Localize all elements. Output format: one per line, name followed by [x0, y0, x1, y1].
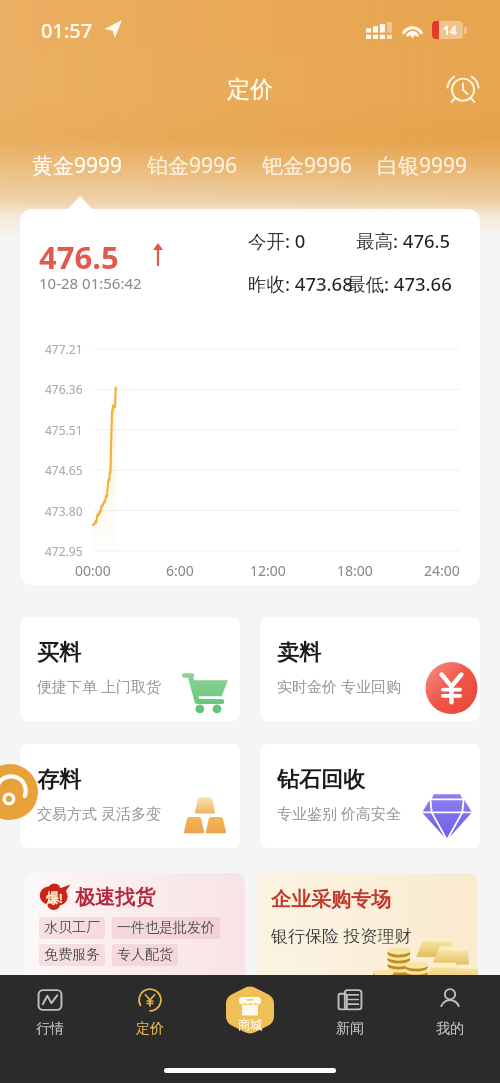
button[interactable]: 黄金9999: [20, 145, 135, 185]
staticText: 24:00: [424, 561, 460, 580]
button[interactable]: 定价: [100, 975, 200, 1049]
staticText: 6:00: [166, 561, 194, 580]
button[interactable]: 企业采购专场: [257, 873, 478, 983]
staticText: 银行保险 投资理财: [271, 924, 412, 947]
staticText: 行情: [36, 1020, 64, 1038]
staticText: 475.51: [45, 422, 83, 438]
staticText: 白银9999: [377, 151, 468, 180]
staticText: 00:00: [75, 561, 111, 580]
button[interactable]: 钯金9996: [250, 145, 365, 185]
staticText: 钻石回收: [277, 766, 365, 794]
staticText: 一件也是批发价: [117, 919, 215, 937]
button[interactable]: 商城: [226, 985, 274, 1035]
staticText: 免费服务: [44, 946, 100, 964]
staticText: 01:57: [41, 17, 93, 44]
button[interactable]: 卖料: [260, 617, 480, 721]
staticText: 12:00: [250, 561, 286, 580]
staticText: 铂金9996: [147, 151, 238, 180]
staticText: 473.80: [45, 503, 83, 519]
staticText: 最低: 473.66: [347, 271, 452, 296]
button[interactable]: 白银9999: [365, 145, 480, 185]
staticText: 定价: [227, 75, 273, 104]
staticText: 交易方式 灵活多变: [37, 803, 161, 823]
staticText: 钯金9996: [262, 151, 353, 180]
button[interactable]: 客服: [0, 764, 38, 820]
staticText: 476.5: [39, 236, 119, 278]
staticText: 14: [443, 22, 457, 38]
staticText: 我的: [436, 1020, 464, 1038]
button[interactable]: 行情: [0, 975, 100, 1049]
button[interactable]: 买料: [20, 617, 240, 721]
staticText: 476.36: [45, 381, 83, 397]
button[interactable]: 476.5: [20, 209, 480, 585]
staticText: 黄金9999: [32, 151, 123, 180]
button[interactable]: 钻石回收: [260, 744, 480, 848]
staticText: 定价: [136, 1020, 164, 1038]
button[interactable]: 新闻: [300, 975, 400, 1049]
staticText: 477.21: [45, 341, 83, 357]
button[interactable]: 铂金9996: [135, 145, 250, 185]
staticText: 极速找货: [75, 885, 155, 910]
staticText: 今开: 0: [248, 228, 306, 253]
staticText: 商城: [238, 1017, 262, 1032]
staticText: 卖料: [277, 639, 321, 667]
staticText: 472.95: [45, 543, 83, 559]
staticText: 昨收: 473.68: [248, 271, 353, 296]
staticText: 最高: 476.5: [356, 228, 451, 253]
staticText: 专人配货: [117, 946, 173, 964]
staticText: 便捷下单 上门取货: [37, 676, 161, 696]
staticText: 专业鉴别 价高安全: [277, 803, 401, 823]
button[interactable]: 存料: [20, 744, 240, 848]
button[interactable]: 爆!: [25, 873, 245, 983]
staticText: 买料: [37, 639, 81, 667]
staticText: 18:00: [337, 561, 373, 580]
button[interactable]: 闹钟提醒: [446, 72, 480, 106]
staticText: 爆!: [46, 889, 63, 907]
staticText: 水贝工厂: [44, 919, 100, 937]
staticText: 474.65: [45, 462, 83, 478]
staticText: 存料: [37, 766, 81, 794]
staticText: 10-28 01:56:42: [39, 273, 142, 293]
staticText: 企业采购专场: [271, 887, 391, 912]
button[interactable]: 我的: [400, 975, 500, 1049]
staticText: 实时金价 专业回购: [277, 676, 401, 696]
staticText: 新闻: [336, 1020, 364, 1038]
